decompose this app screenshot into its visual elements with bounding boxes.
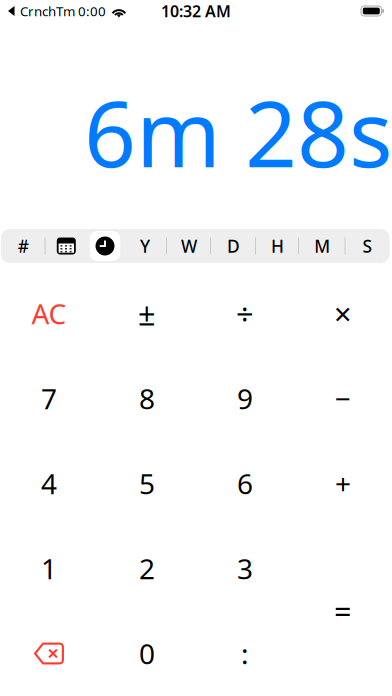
button[interactable]: 1 [0, 526, 98, 611]
staticText: D [227, 234, 240, 257]
staticText: : [241, 635, 249, 672]
staticText: S [362, 234, 372, 257]
button[interactable]: 4 [0, 441, 98, 526]
staticText: CrnchTm 0:00 [20, 2, 106, 20]
staticText: + [335, 465, 351, 502]
button[interactable]: 3 [196, 526, 294, 611]
staticText: H [271, 234, 284, 257]
staticText: 4 [41, 465, 57, 502]
button[interactable]: Hours [256, 229, 299, 263]
staticText: M [314, 234, 330, 257]
staticText: − [335, 380, 351, 417]
button[interactable]: Count [1, 229, 46, 263]
button[interactable]: Weeks [167, 229, 211, 263]
button[interactable]: + [294, 441, 392, 526]
staticText: Y [140, 234, 150, 257]
staticText: 2 [139, 550, 155, 587]
button[interactable]: AC [0, 271, 98, 356]
button[interactable]: = [294, 526, 392, 696]
button[interactable]: Date [46, 229, 87, 263]
staticText: 7 [41, 380, 57, 417]
staticText: AC [31, 295, 66, 332]
staticText: × [334, 293, 352, 334]
staticText: ÷ [236, 293, 254, 334]
button[interactable]: : [196, 611, 294, 696]
staticText: 6 [237, 465, 253, 502]
button[interactable]: Days [211, 229, 256, 263]
staticText: W [181, 234, 197, 257]
button[interactable]: Years [123, 229, 167, 263]
button[interactable]: Seconds [345, 229, 389, 263]
button[interactable]: 2 [98, 526, 196, 611]
button[interactable]: Time [87, 229, 123, 263]
staticText: 8 [139, 380, 155, 417]
button[interactable]: Back to CrnchTm [8, 0, 127, 22]
button[interactable]: ÷ [196, 271, 294, 356]
button[interactable]: ± [98, 271, 196, 356]
button[interactable]: 0 [98, 611, 196, 696]
button[interactable]: 5 [98, 441, 196, 526]
button[interactable]: Delete [0, 611, 98, 696]
button[interactable]: × [294, 271, 392, 356]
staticText: 10:32 AM [161, 0, 231, 22]
staticText: 5 [139, 465, 155, 502]
button[interactable]: − [294, 356, 392, 441]
button[interactable]: 7 [0, 356, 98, 441]
button[interactable]: 8 [98, 356, 196, 441]
staticText: 0 [139, 635, 155, 672]
button[interactable]: Minutes [299, 229, 345, 263]
staticText: 6m 28s [84, 72, 392, 192]
staticText: 3 [237, 550, 253, 587]
staticText: = [334, 591, 352, 631]
button[interactable]: 6 [196, 441, 294, 526]
button[interactable]: 9 [196, 356, 294, 441]
staticText: # [18, 234, 29, 257]
staticText: 9 [237, 380, 253, 417]
staticText: ± [138, 293, 156, 334]
staticText: 1 [41, 550, 57, 587]
